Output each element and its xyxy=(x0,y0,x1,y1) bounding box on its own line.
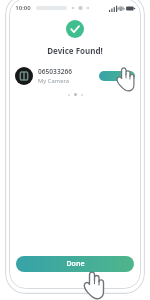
staticText: Device Found! xyxy=(47,45,103,56)
staticText: 065033266 xyxy=(38,67,72,76)
button[interactable]: Done xyxy=(16,256,134,272)
staticText: Done xyxy=(66,259,85,269)
staticText: 10:00 xyxy=(15,4,31,12)
button[interactable]: Connect device xyxy=(99,71,135,81)
staticText: My Camera xyxy=(38,77,69,85)
button[interactable]: 065033266 xyxy=(15,65,135,87)
